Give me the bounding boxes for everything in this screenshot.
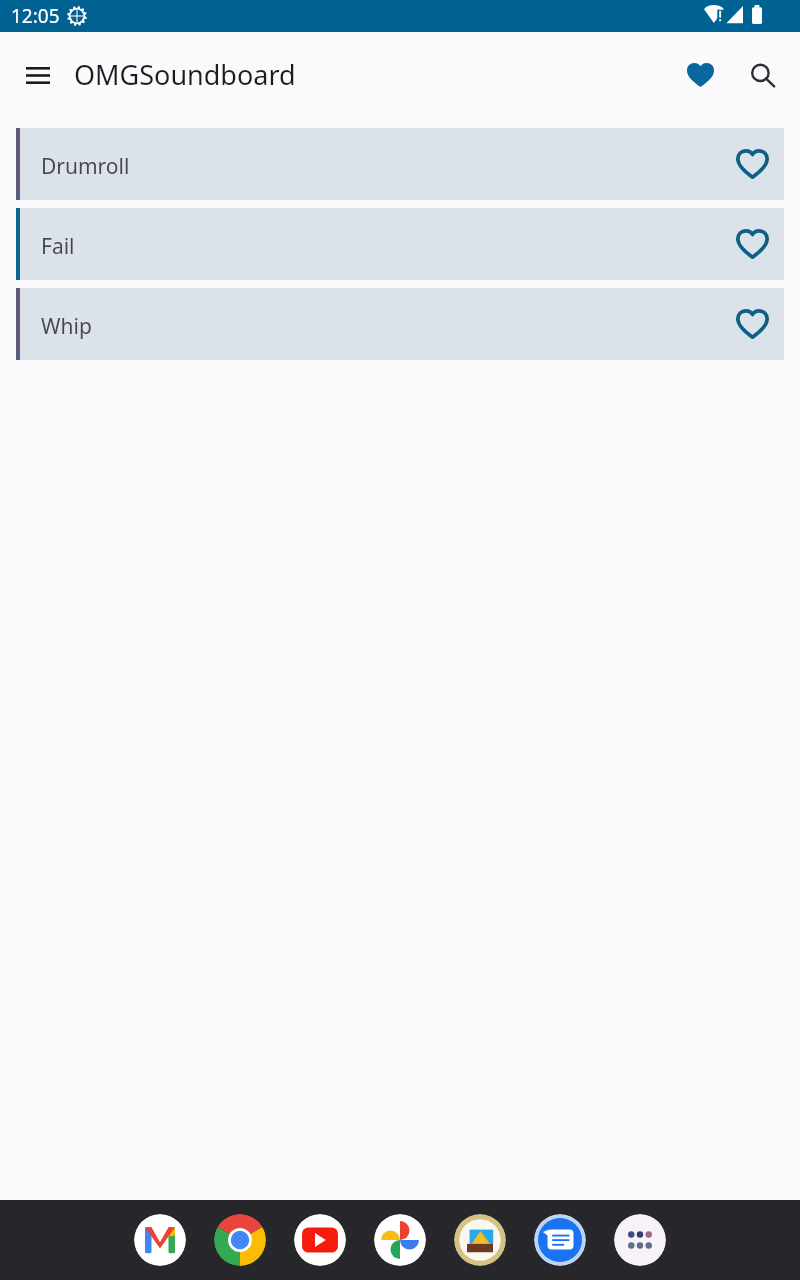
button[interactable]: Gmail — [134, 1214, 186, 1266]
button[interactable]: Favorites — [672, 47, 728, 103]
button[interactable]: Open navigation menu — [10, 47, 66, 103]
button[interactable]: YouTube — [294, 1214, 346, 1266]
button[interactable]: Whip — [16, 288, 784, 360]
button[interactable]: Drumroll — [16, 128, 784, 200]
staticText: OMGSoundboard — [74, 56, 296, 93]
staticText: Drumroll — [41, 152, 130, 181]
button[interactable]: Add Drumroll to favorites — [724, 136, 780, 192]
staticText: 12:05 — [11, 3, 60, 29]
button[interactable]: Search — [735, 48, 791, 104]
button[interactable]: Gallery — [454, 1214, 506, 1266]
button[interactable]: Add Whip to favorites — [724, 296, 780, 352]
button[interactable]: Add Fail to favorites — [724, 216, 780, 272]
button[interactable]: Fail — [16, 208, 784, 280]
staticText: Whip — [41, 312, 92, 341]
button[interactable]: Messages — [534, 1214, 586, 1266]
button[interactable]: Chrome — [214, 1214, 266, 1266]
button[interactable]: All apps — [614, 1214, 666, 1266]
staticText: Fail — [41, 232, 75, 261]
button[interactable]: Photos — [374, 1214, 426, 1266]
